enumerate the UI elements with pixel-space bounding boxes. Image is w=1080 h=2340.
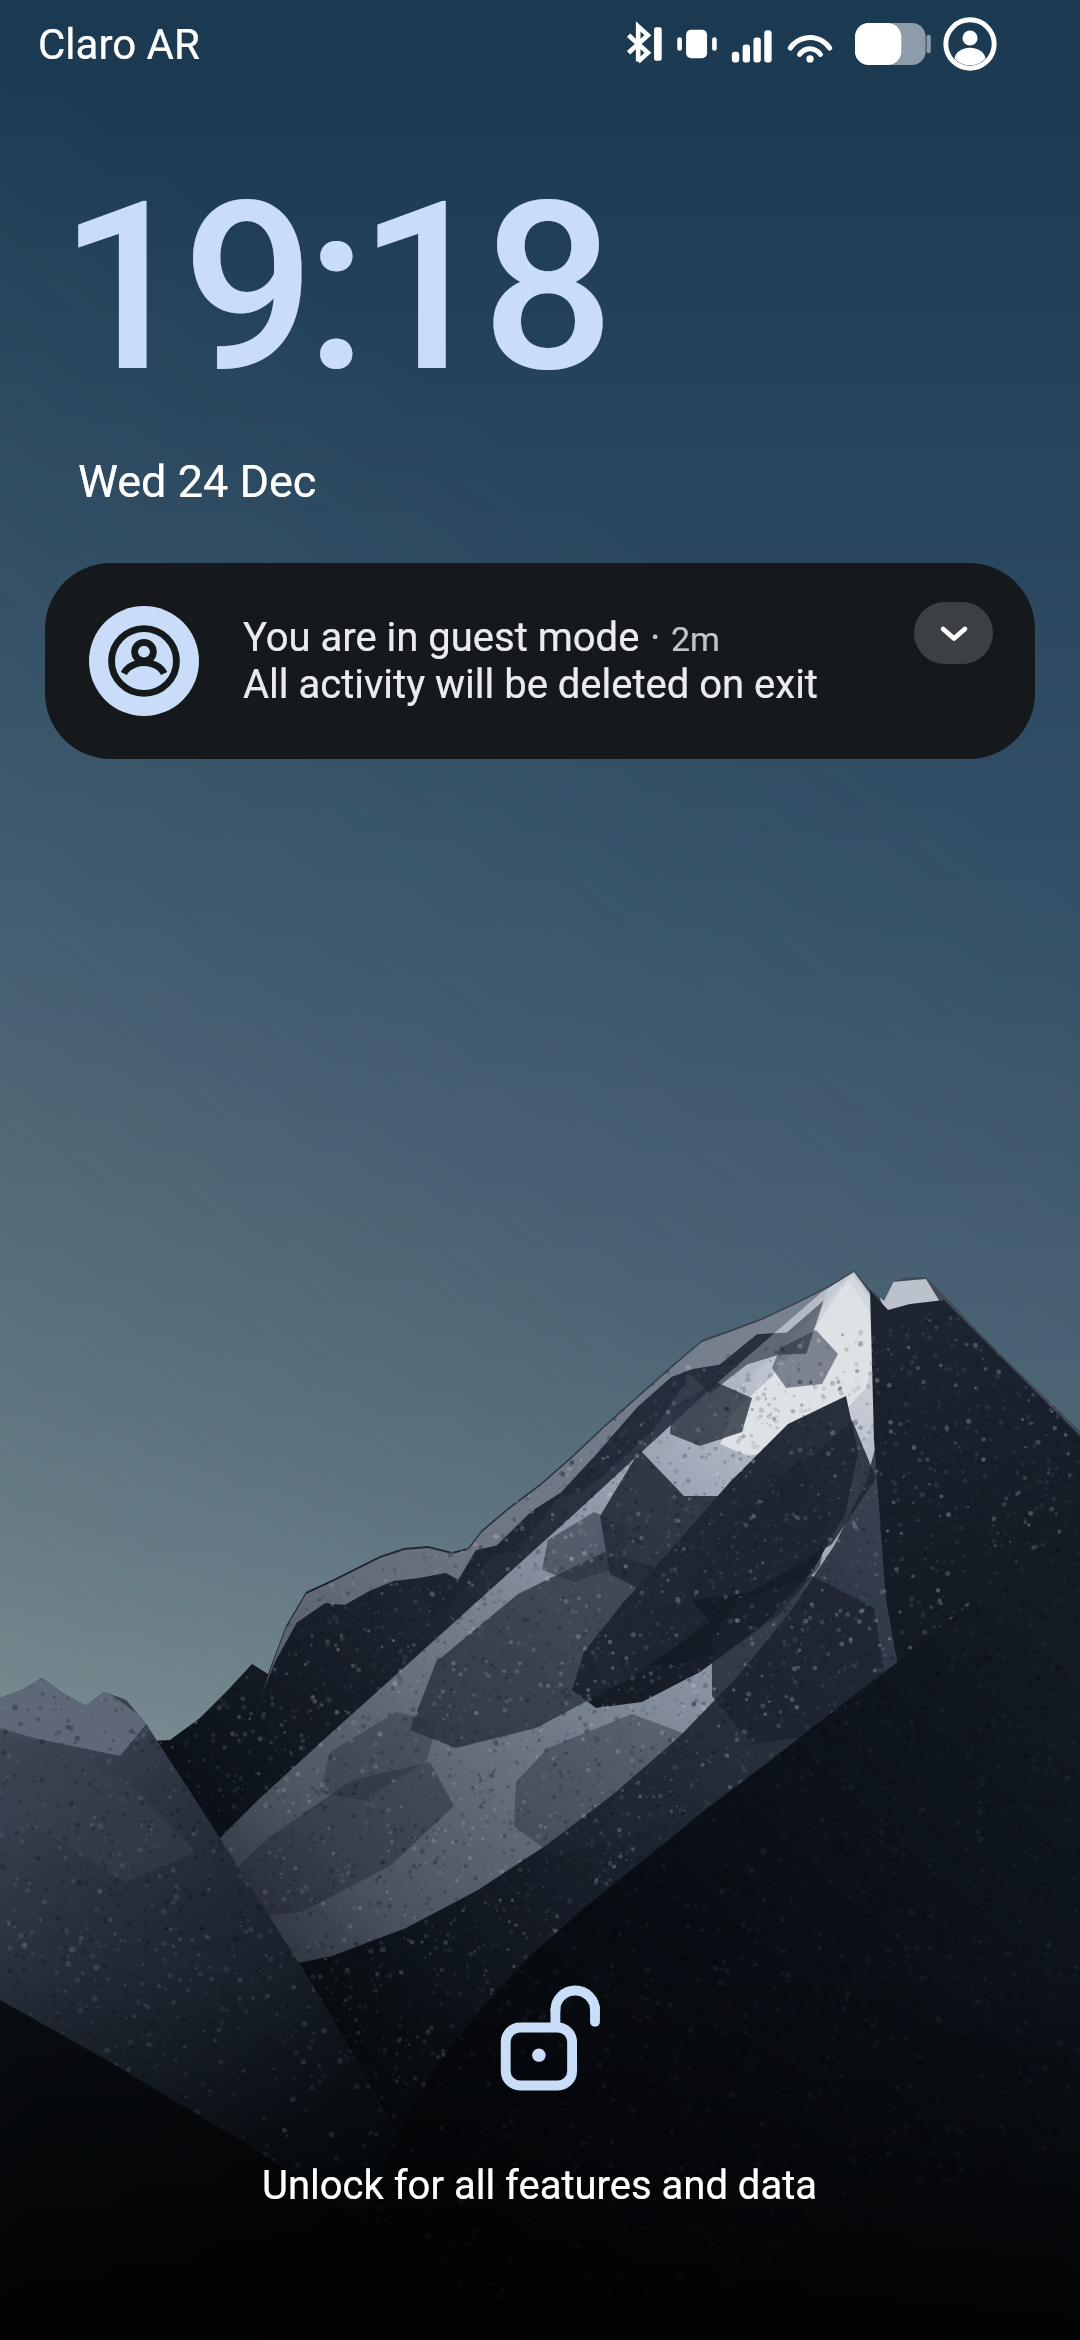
staticText: Unlock for all features and data: [262, 2162, 818, 2209]
button[interactable]: You are in guest mode: [45, 563, 1035, 759]
staticText: 2m: [671, 619, 720, 659]
button[interactable]: Unlock: [479, 1960, 639, 2120]
staticText: All activity will be deleted on exit: [243, 661, 818, 708]
staticText: ·: [640, 614, 671, 661]
staticText: 19:18: [59, 152, 606, 425]
button[interactable]: Expand notification: [914, 602, 993, 664]
staticText: Claro AR: [38, 20, 200, 69]
staticText: You are in guest mode: [243, 614, 640, 661]
staticText: Wed 24 Dec: [78, 455, 317, 508]
button[interactable]: Switch user: [928, 2, 1012, 86]
